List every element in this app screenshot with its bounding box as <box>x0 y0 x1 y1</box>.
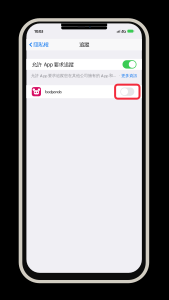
staticText: 更多資訊 <box>121 73 137 78</box>
staticText: foodpanda <box>45 89 62 94</box>
staticText: 4G <box>121 28 126 34</box>
button[interactable]: 允許 App 要求追蹤 <box>26 59 142 70</box>
staticText: · <box>118 73 121 78</box>
staticText: 10:03 <box>34 28 43 34</box>
button[interactable]: foodpanda <box>26 85 142 98</box>
staticText: 允許 App 要求追蹤 <box>32 61 74 68</box>
button[interactable]: 更多資訊 <box>121 73 137 78</box>
staticText: 隱私權 <box>33 41 48 48</box>
staticText: 允許 App 要求追蹤您在其他公司擁有的 App 和網站中的活動。 <box>31 73 118 78</box>
button[interactable]: 隱私權 <box>26 39 51 50</box>
staticText: 追蹤 <box>79 41 89 48</box>
